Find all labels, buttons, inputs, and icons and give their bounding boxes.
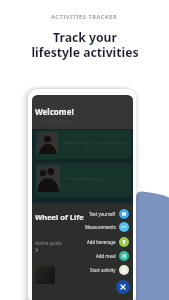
staticText: Add beverage bbox=[87, 239, 116, 245]
staticText: Yesterday Evening bbox=[65, 176, 101, 182]
staticText: Welcome! bbox=[35, 106, 74, 117]
staticText: Active goals bbox=[35, 240, 62, 247]
staticText: ACTIVITIES TRACKER bbox=[51, 13, 118, 21]
button[interactable]: Add meal bbox=[32, 251, 129, 261]
button[interactable]: Test yourself bbox=[32, 209, 129, 219]
staticText: Track your lifestyle activities bbox=[31, 29, 139, 61]
staticText: Almost 2 days since morning jog bbox=[63, 140, 127, 146]
button[interactable]: Yesterday Evening bbox=[37, 165, 129, 195]
staticText: Add meal bbox=[96, 253, 116, 259]
button[interactable] bbox=[35, 266, 55, 284]
button[interactable]: Add beverage bbox=[32, 237, 129, 247]
staticText: Test yourself bbox=[89, 211, 116, 217]
button[interactable]: Start activity bbox=[32, 265, 129, 275]
button[interactable]: Almost 2 days since morning jog bbox=[37, 132, 129, 157]
staticText: Wheel of Life bbox=[35, 212, 84, 222]
staticText: Start activity bbox=[90, 267, 116, 273]
button[interactable]: Close menu bbox=[116, 280, 130, 294]
button[interactable]: Measurements bbox=[32, 222, 129, 232]
staticText: Measurements bbox=[85, 224, 116, 230]
